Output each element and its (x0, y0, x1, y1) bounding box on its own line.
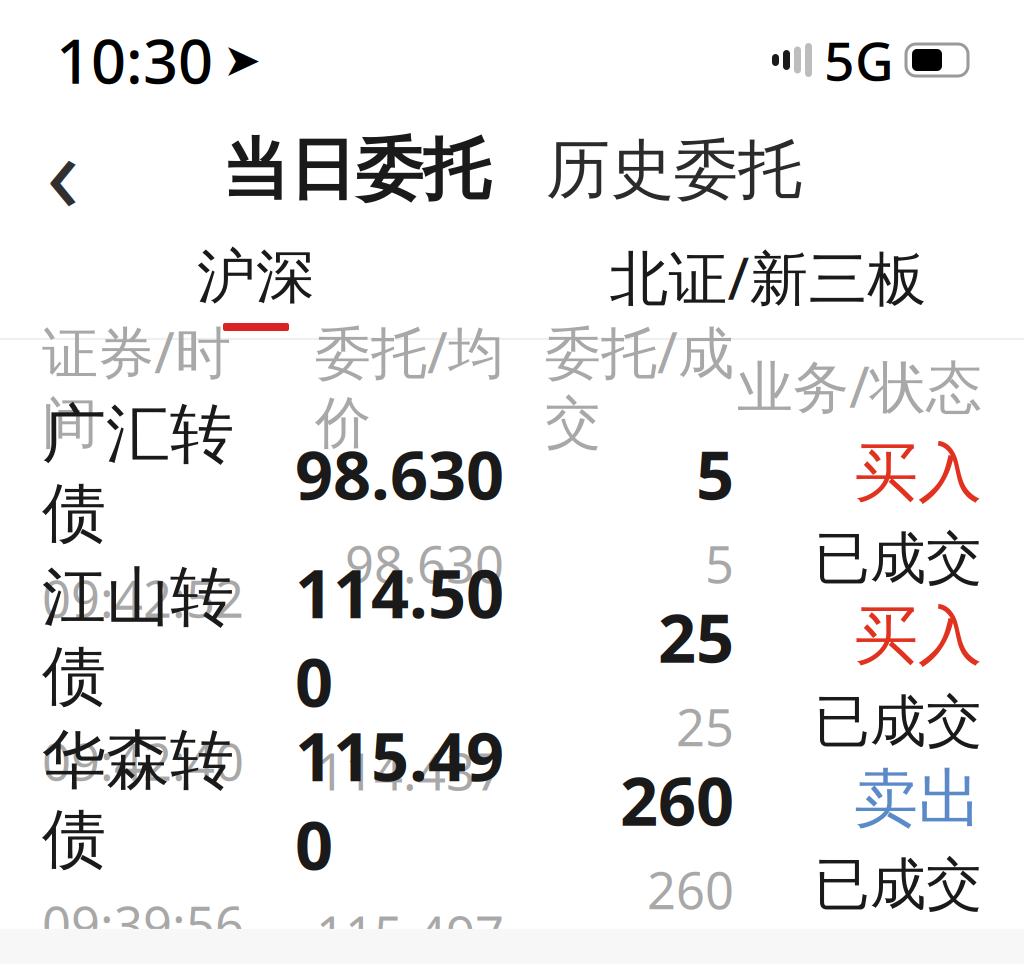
staticText: 华森转债 (42, 721, 234, 878)
button[interactable]: 广汇转债 (0, 432, 1024, 595)
button[interactable]: 当日委托 (222, 129, 490, 211)
staticText: 委托/成交 (545, 314, 734, 457)
staticText: 已成交 (814, 524, 982, 593)
staticText: 10:30 (56, 19, 213, 101)
staticText: 历史委托 (546, 131, 802, 209)
staticText: 业务/状态 (737, 349, 982, 423)
staticText: 98.630 (295, 429, 504, 518)
staticText: 已成交 (814, 850, 982, 919)
staticText: 09:42:40 (42, 727, 244, 795)
staticText: 5 (705, 530, 734, 597)
staticText: 沪深 (197, 241, 315, 313)
staticText: ➤ (223, 34, 261, 86)
staticText: 江山转债 (42, 558, 234, 715)
staticText: 当日委托 (222, 129, 490, 211)
staticText: 广汇转债 (42, 395, 234, 552)
staticText: 5G (824, 25, 894, 95)
staticText: 114.437 (316, 737, 504, 805)
staticText: 已成交 (814, 687, 982, 756)
button[interactable]: 历史委托 (546, 131, 802, 209)
staticText: 260 (620, 755, 734, 844)
button[interactable]: 江山转债 (0, 595, 1024, 758)
staticText: 98.630 (345, 530, 504, 597)
staticText: 114.500 (295, 548, 504, 725)
staticText: ‹ (46, 97, 80, 243)
button[interactable]: 北证/新三板 (512, 238, 1024, 334)
button[interactable]: 沪深 (0, 241, 512, 331)
staticText: 260 (647, 856, 734, 923)
staticText: 证券/时间 (42, 314, 231, 457)
staticText: 09:39:56 (42, 890, 244, 958)
staticText: 09:42:52 (42, 564, 244, 632)
staticText: 5 (696, 429, 734, 518)
button[interactable]: Back (18, 125, 108, 215)
button[interactable]: 华森转债 (0, 758, 1024, 921)
staticText: 卖出 (854, 760, 982, 838)
staticText: 115.497 (316, 900, 504, 964)
staticText: 北证/新三板 (609, 238, 926, 316)
staticText: 115.490 (295, 711, 504, 888)
staticText: 买入 (854, 597, 982, 675)
staticText: 25 (658, 592, 734, 681)
staticText: 25 (676, 693, 734, 760)
staticText: 买入 (854, 434, 982, 512)
staticText: 委托/均价 (315, 314, 504, 457)
